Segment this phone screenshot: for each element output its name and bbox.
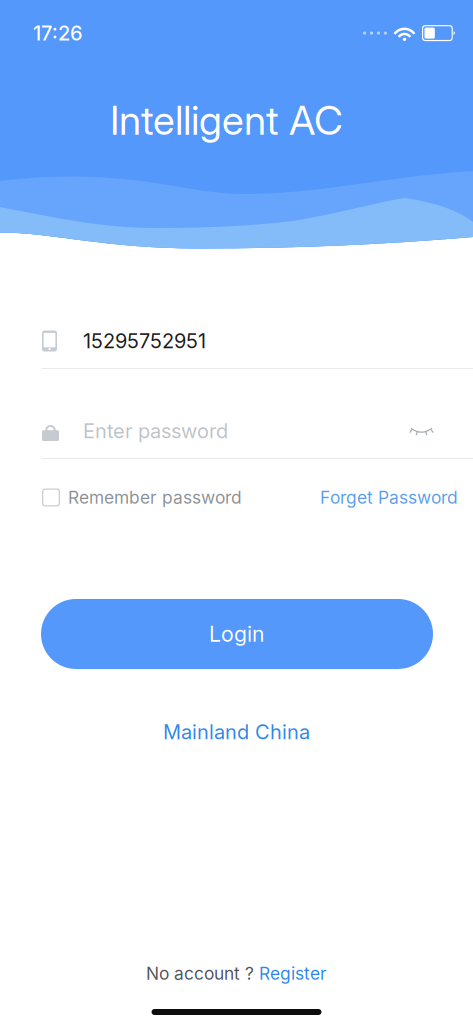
staticText: Enter password [83,419,228,443]
staticText: 15295752951 [83,329,206,353]
staticText: 17:26 [33,21,83,45]
button[interactable]: Show password [402,418,441,444]
staticText: No account ? [146,963,254,984]
staticText: Remember password [68,487,242,508]
staticText: Mainland China [163,720,310,744]
staticText: Forget Password [320,487,458,508]
button[interactable]: Remember password [42,482,242,513]
button[interactable]: Mainland China [0,720,473,744]
staticText: Intelligent AC [110,96,343,144]
button[interactable]: Login [41,599,433,669]
button[interactable]: Forget Password [320,482,458,513]
button[interactable]: Register [259,963,327,984]
staticText: Login [209,621,265,647]
staticText: Register [259,963,327,984]
